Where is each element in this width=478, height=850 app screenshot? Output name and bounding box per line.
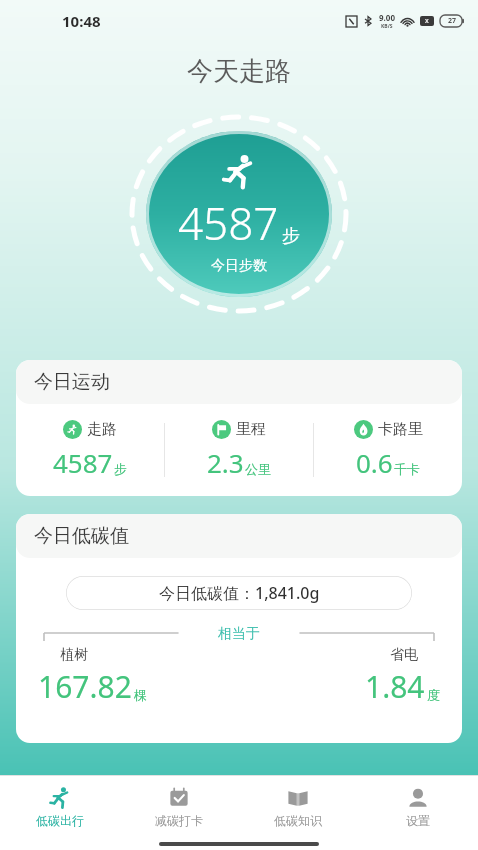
staticText: 相当于: [218, 625, 260, 643]
staticText: 今日步数: [211, 257, 267, 275]
staticText: 今日低碳值：1,841.0g: [159, 582, 320, 604]
staticText: 4587: [53, 445, 113, 480]
staticText: x: [425, 16, 429, 26]
staticText: 9.00: [379, 12, 395, 23]
button[interactable]: 今日运动: [16, 360, 462, 496]
staticText: 设置: [406, 813, 430, 828]
staticText: 步: [282, 225, 300, 248]
staticText: 0.6: [356, 445, 393, 480]
staticText: 度: [427, 687, 440, 703]
staticText: 减碳打卡: [155, 813, 203, 828]
staticText: 植树: [60, 646, 88, 664]
button[interactable]: 里程: [165, 420, 313, 480]
staticText: 千卡: [394, 461, 420, 477]
button[interactable]: 省电: [239, 646, 440, 707]
button[interactable]: 卡路里: [314, 420, 462, 480]
button[interactable]: 今日低碳值: [16, 514, 462, 743]
staticText: 今天走路: [187, 55, 291, 88]
staticText: 卡路里: [378, 420, 423, 439]
staticText: 省电: [390, 646, 418, 664]
staticText: 27: [448, 16, 457, 26]
staticText: 棵: [134, 687, 147, 703]
button[interactable]: 走路: [16, 420, 164, 480]
staticText: 步: [114, 461, 127, 477]
staticText: 2.3: [207, 445, 244, 480]
staticText: 10:48: [62, 11, 101, 31]
button[interactable]: 今日低碳值：1,841.0g: [66, 576, 412, 610]
button[interactable]: 低碳知识: [238, 776, 358, 838]
staticText: 今日运动: [34, 370, 110, 394]
staticText: 167.82: [38, 666, 132, 707]
staticText: 低碳知识: [274, 813, 322, 828]
staticText: 里程: [236, 420, 266, 439]
button[interactable]: 设置: [358, 776, 478, 838]
staticText: 公里: [245, 461, 271, 477]
staticText: KB/S: [381, 23, 393, 30]
button[interactable]: 减碳打卡: [119, 776, 238, 838]
button[interactable]: 低碳出行: [0, 776, 119, 838]
button[interactable]: 植树: [38, 646, 239, 707]
staticText: 4587: [178, 193, 279, 253]
staticText: 1.84: [365, 666, 425, 707]
staticText: 走路: [87, 420, 117, 439]
staticText: 低碳出行: [36, 813, 84, 828]
staticText: 今日低碳值: [34, 524, 129, 548]
